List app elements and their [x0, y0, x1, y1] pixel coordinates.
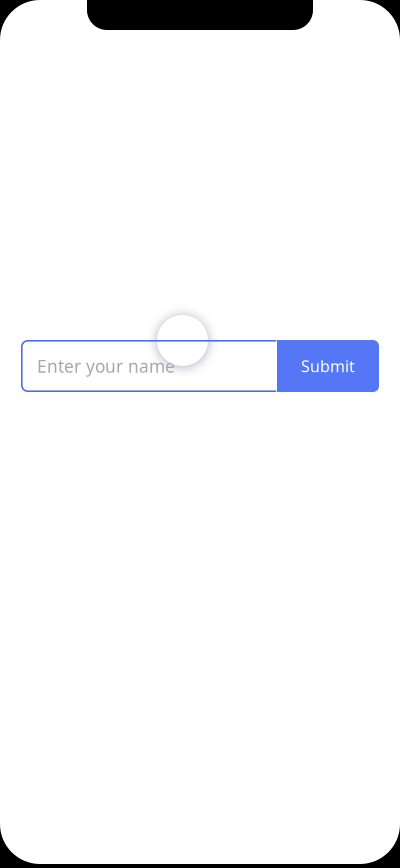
- button[interactable]: Enter your name: [21, 340, 277, 392]
- staticText: Submit: [301, 355, 355, 377]
- staticText: Enter your name: [37, 354, 175, 377]
- button[interactable]: Submit: [277, 340, 379, 392]
